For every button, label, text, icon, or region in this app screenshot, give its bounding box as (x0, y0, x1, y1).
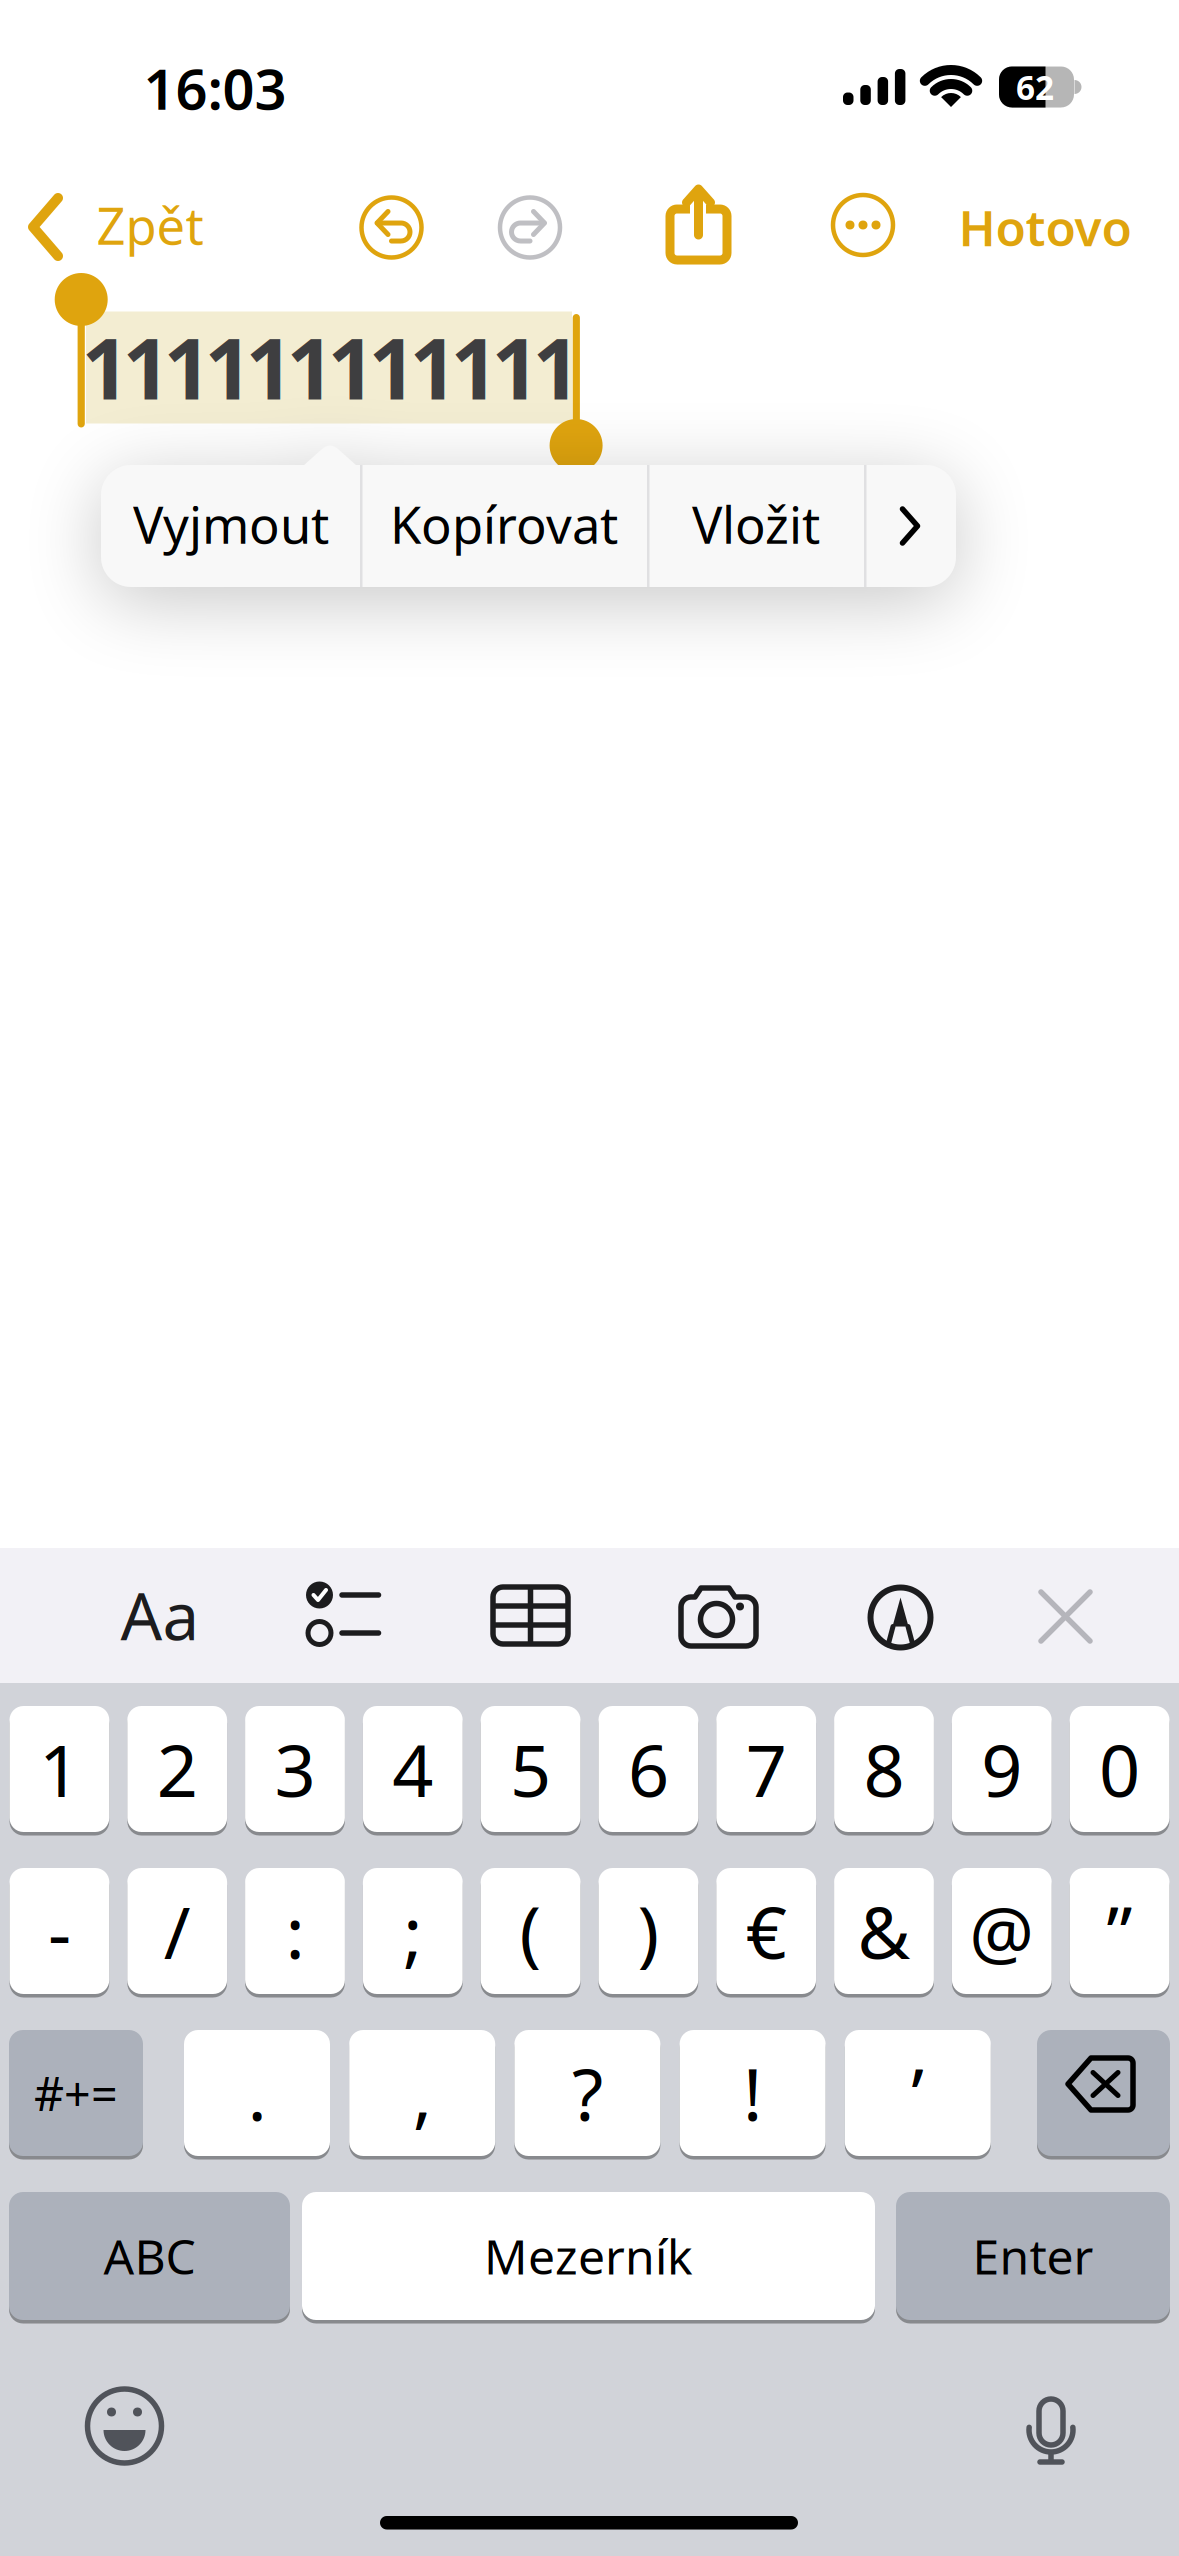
staticText: 3 (274, 1721, 315, 1817)
staticText: Zpět (96, 191, 203, 259)
button[interactable]: ; (363, 1868, 463, 1994)
button[interactable]: 2 (127, 1706, 227, 1832)
button[interactable]: #+= (9, 2030, 143, 2156)
button[interactable]: 9 (952, 1706, 1052, 1832)
button[interactable]: 7 (716, 1706, 816, 1832)
button[interactable]: Vložit (648, 463, 864, 585)
staticText: Aa (120, 1572, 199, 1658)
button[interactable]: Table (490, 1584, 571, 1647)
button[interactable]: Share (665, 184, 732, 265)
button[interactable]: / (127, 1868, 227, 1994)
button[interactable]: Undo (358, 194, 424, 260)
staticText: 5 (510, 1721, 551, 1817)
button[interactable]: @ (952, 1868, 1052, 1994)
button[interactable]: & (834, 1868, 934, 1994)
staticText: ” (1107, 1883, 1133, 1979)
staticText: @ (969, 1883, 1034, 1979)
staticText: 111111111111 (81, 311, 580, 423)
button[interactable]: Formatting (105, 1560, 215, 1670)
staticText: 6 (628, 1721, 669, 1817)
button[interactable]: More (830, 192, 896, 258)
button[interactable]: Redo (497, 194, 563, 260)
staticText: - (48, 1883, 71, 1979)
button[interactable]: Hotovo (958, 194, 1131, 260)
button[interactable]: Checklist (302, 1579, 382, 1655)
staticText: € (746, 1883, 787, 1979)
staticText: #+= (34, 2062, 118, 2124)
button[interactable]: 5 (481, 1706, 580, 1832)
staticText: Vložit (692, 490, 820, 558)
staticText: & (857, 1883, 910, 1979)
button[interactable]: ABC (9, 2192, 290, 2320)
staticText: 8 (863, 1721, 904, 1817)
button[interactable]: 3 (245, 1706, 345, 1832)
button[interactable]: ! (680, 2030, 826, 2156)
staticText: ’ (911, 2045, 924, 2141)
button[interactable]: 1 (9, 1706, 109, 1832)
staticText: Vyjmout (133, 490, 329, 558)
staticText: 9 (981, 1721, 1022, 1817)
button[interactable]: Zpět (10, 191, 250, 263)
button[interactable]: 0 (1070, 1706, 1169, 1832)
button[interactable]: , (349, 2030, 495, 2156)
staticText: Enter (972, 2224, 1093, 2288)
button[interactable]: : (245, 1868, 345, 1994)
button[interactable]: 6 (598, 1706, 698, 1832)
button[interactable]: Markup (867, 1584, 933, 1650)
button[interactable]: 4 (363, 1706, 463, 1832)
button[interactable]: Dismiss keyboard (1035, 1586, 1096, 1647)
staticText: Mezerník (484, 2224, 693, 2288)
staticText: ( (520, 1883, 542, 1979)
staticText: ? (572, 2045, 603, 2141)
button[interactable]: ? (514, 2030, 660, 2156)
staticText: ; (403, 1883, 422, 1979)
button[interactable]: ” (1070, 1868, 1169, 1994)
button[interactable]: ) (598, 1868, 698, 1994)
staticText: 1 (39, 1721, 80, 1817)
staticText: ABC (103, 2224, 195, 2288)
button[interactable]: Kopírovat (361, 463, 647, 585)
staticText: 0 (1099, 1721, 1140, 1817)
button[interactable]: Emoji (84, 2386, 164, 2466)
staticText: Kopírovat (390, 490, 618, 558)
staticText: 16:03 (143, 51, 286, 125)
staticText: 7 (746, 1721, 787, 1817)
button[interactable]: Camera (678, 1585, 759, 1649)
staticText: . (247, 2045, 266, 2141)
button[interactable]: More actions (864, 465, 955, 587)
button[interactable]: Delete (1037, 2030, 1170, 2156)
staticText: / (164, 1883, 191, 1979)
button[interactable]: ( (481, 1868, 580, 1994)
staticText: 2 (157, 1721, 198, 1817)
button[interactable]: Vyjmout (101, 463, 360, 585)
button[interactable]: - (9, 1868, 109, 1994)
staticText: 62 (1016, 65, 1054, 109)
button[interactable]: 8 (834, 1706, 934, 1832)
button[interactable]: Mezerník (302, 2192, 875, 2320)
button[interactable]: Dictation (1018, 2396, 1084, 2466)
staticText: ! (743, 2045, 762, 2141)
staticText: Hotovo (958, 194, 1131, 260)
button[interactable]: € (716, 1868, 816, 1994)
staticText: ) (637, 1883, 659, 1979)
button[interactable]: ’ (845, 2030, 991, 2156)
staticText: 4 (392, 1721, 433, 1817)
staticText: : (285, 1883, 304, 1979)
button[interactable]: Enter (896, 2192, 1170, 2320)
button[interactable]: . (184, 2030, 330, 2156)
staticText: , (413, 2045, 432, 2141)
